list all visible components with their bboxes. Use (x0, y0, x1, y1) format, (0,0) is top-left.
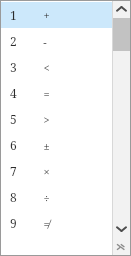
button[interactable]: 8 (1, 184, 112, 210)
staticText: 5 (10, 111, 17, 127)
staticText: = (43, 86, 50, 101)
button[interactable]: 9 (1, 210, 112, 236)
button[interactable]: 3 (1, 54, 112, 80)
staticText: ± (43, 138, 50, 153)
staticText: - (43, 34, 47, 49)
button[interactable]: 2 (1, 28, 112, 54)
staticText: 4 (10, 85, 17, 101)
staticText: < (43, 60, 50, 75)
button[interactable]: Expand (112, 239, 130, 255)
button[interactable]: Scroll up (112, 1, 130, 17)
button[interactable]: 5 (1, 106, 112, 132)
button[interactable]: 7 (1, 158, 112, 184)
staticText: 9 (10, 215, 17, 231)
staticText: 2 (10, 33, 17, 49)
staticText: > (43, 112, 50, 127)
staticText: × (43, 164, 50, 179)
staticText: 8 (10, 189, 17, 205)
staticText: 6 (10, 137, 17, 153)
button[interactable]: 4 (1, 80, 112, 106)
staticText: 7 (10, 163, 17, 179)
staticText: ≠ (43, 216, 50, 231)
button[interactable]: 6 (1, 132, 112, 158)
button[interactable]: 1 (1, 2, 112, 28)
staticText: ÷ (43, 190, 50, 205)
staticText: 1 (10, 7, 17, 23)
staticText: 3 (10, 59, 17, 75)
staticText: + (43, 8, 50, 23)
button[interactable]: Scroll down (112, 221, 130, 237)
